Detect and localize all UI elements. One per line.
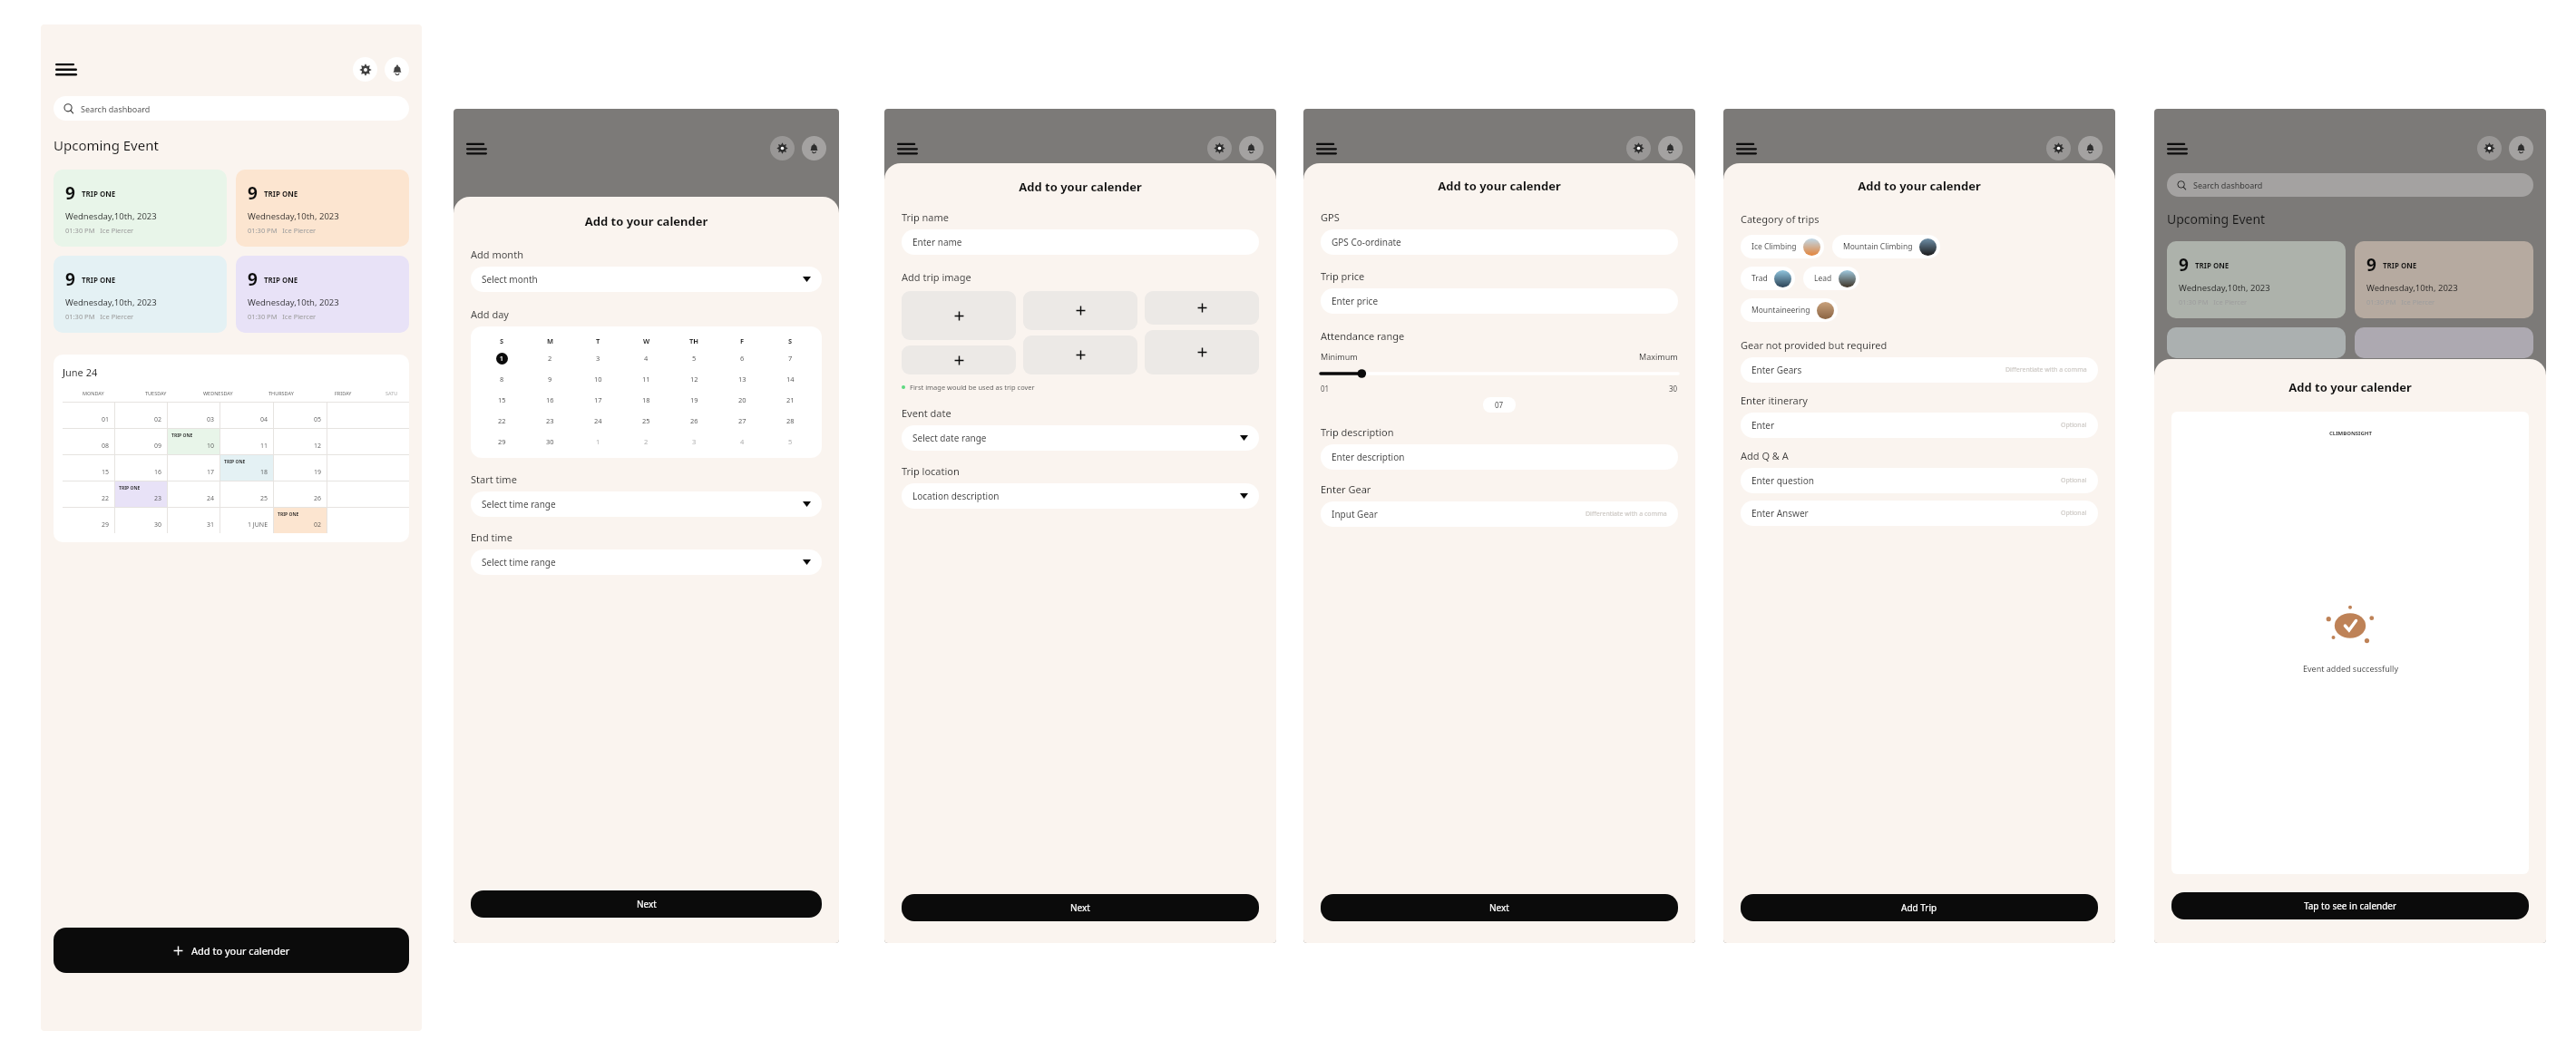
button[interactable]: TRIP ONE: [115, 481, 167, 507]
button[interactable]: Add image: [1145, 330, 1259, 374]
button[interactable]: 27: [718, 414, 766, 427]
button[interactable]: 2: [622, 435, 670, 448]
button[interactable]: 4: [718, 435, 766, 448]
button[interactable]: 15: [478, 394, 526, 406]
button[interactable]: [327, 429, 380, 454]
button[interactable]: 05: [274, 403, 327, 428]
button[interactable]: TRIP ONE: [274, 508, 327, 533]
button[interactable]: 14: [766, 373, 815, 385]
button[interactable]: Notifications: [2078, 136, 2103, 160]
button[interactable]: Lead: [1803, 267, 1859, 290]
button[interactable]: 28: [766, 414, 815, 427]
button[interactable]: 2: [526, 352, 574, 365]
button[interactable]: 29: [478, 435, 526, 448]
button[interactable]: Mountaineering: [1741, 298, 1838, 322]
button[interactable]: 30: [526, 435, 574, 448]
button[interactable]: 20: [718, 394, 766, 406]
button[interactable]: 08: [63, 429, 114, 454]
button[interactable]: 15: [63, 455, 114, 481]
button[interactable]: Select date range: [902, 425, 1259, 451]
button[interactable]: 26: [274, 481, 327, 507]
button[interactable]: Next: [1321, 894, 1678, 921]
button[interactable]: 5: [766, 435, 815, 448]
button[interactable]: GPS Co-ordinate: [1321, 229, 1678, 255]
button[interactable]: Settings: [353, 57, 377, 82]
button[interactable]: [327, 455, 380, 481]
button[interactable]: 19: [274, 455, 327, 481]
button[interactable]: Tap to see in calender: [2171, 892, 2529, 919]
button[interactable]: 9: [526, 373, 574, 385]
button[interactable]: 22: [478, 414, 526, 427]
button[interactable]: Next: [902, 894, 1259, 921]
button[interactable]: 17: [168, 455, 220, 481]
button[interactable]: 3: [670, 435, 718, 448]
button[interactable]: 1 JUNE: [220, 508, 273, 533]
button[interactable]: TRIP ONE: [168, 429, 220, 454]
button[interactable]: 01: [63, 403, 114, 428]
button[interactable]: Add Trip: [1741, 894, 2098, 921]
button[interactable]: 03: [168, 403, 220, 428]
button[interactable]: 9: [54, 170, 227, 247]
button[interactable]: 04: [220, 403, 273, 428]
button[interactable]: 21: [766, 394, 815, 406]
button[interactable]: Menu: [54, 61, 79, 78]
button[interactable]: Enter Answer: [1741, 501, 2098, 526]
button[interactable]: 29: [63, 508, 114, 533]
button[interactable]: 25: [220, 481, 273, 507]
button[interactable]: Notifications: [2509, 136, 2533, 160]
button[interactable]: 31: [168, 508, 220, 533]
button[interactable]: Select month: [471, 267, 822, 292]
button[interactable]: Mountain Climbing: [1832, 235, 1940, 258]
button[interactable]: 26: [670, 414, 718, 427]
button[interactable]: Enter: [1741, 413, 2098, 438]
button[interactable]: Enter price: [1321, 288, 1678, 314]
button[interactable]: Ice Climbing: [1741, 235, 1824, 258]
button[interactable]: 19: [670, 394, 718, 406]
button[interactable]: [327, 481, 380, 507]
button[interactable]: [327, 403, 380, 428]
button[interactable]: Enter description: [1321, 444, 1678, 470]
button[interactable]: 30: [115, 508, 167, 533]
button[interactable]: 7: [766, 352, 815, 365]
button[interactable]: 16: [526, 394, 574, 406]
button[interactable]: Enter name: [902, 229, 1259, 255]
button[interactable]: Select time range: [471, 491, 822, 517]
button[interactable]: Add to your calender: [54, 928, 409, 973]
button[interactable]: 9: [54, 256, 227, 333]
button[interactable]: 3: [574, 352, 622, 365]
button[interactable]: 02: [115, 403, 167, 428]
button[interactable]: Enter Gears: [1741, 357, 2098, 383]
button[interactable]: Notifications: [385, 57, 409, 82]
button[interactable]: Add image: [1023, 336, 1137, 374]
button[interactable]: 9: [236, 170, 409, 247]
button[interactable]: 18: [622, 394, 670, 406]
button[interactable]: 1: [574, 435, 622, 448]
button[interactable]: Notifications: [802, 136, 826, 160]
button[interactable]: Notifications: [1658, 136, 1683, 160]
button[interactable]: [1321, 368, 1678, 379]
button[interactable]: 8: [478, 373, 526, 385]
button[interactable]: 17: [574, 394, 622, 406]
button[interactable]: 16: [115, 455, 167, 481]
button[interactable]: 9: [2167, 241, 2346, 318]
button[interactable]: Search dashboard: [54, 96, 409, 121]
button[interactable]: Add image: [902, 345, 1016, 374]
button[interactable]: Add image: [1145, 291, 1259, 325]
button[interactable]: 11: [622, 373, 670, 385]
button[interactable]: 12: [274, 429, 327, 454]
button[interactable]: Notifications: [1239, 136, 1264, 160]
button[interactable]: 9: [2355, 241, 2533, 318]
button[interactable]: Add image: [1023, 291, 1137, 330]
button[interactable]: Settings: [2477, 136, 2502, 160]
button[interactable]: Input Gear: [1321, 501, 1678, 527]
button[interactable]: Enter question: [1741, 468, 2098, 493]
button[interactable]: 24: [574, 414, 622, 427]
button[interactable]: 13: [718, 373, 766, 385]
button[interactable]: Add image: [902, 291, 1016, 340]
button[interactable]: Trad: [1741, 267, 1795, 290]
button[interactable]: 9: [236, 256, 409, 333]
button[interactable]: Location description: [902, 483, 1259, 509]
button[interactable]: 5: [670, 352, 718, 365]
button[interactable]: 4: [622, 352, 670, 365]
button[interactable]: 22: [63, 481, 114, 507]
